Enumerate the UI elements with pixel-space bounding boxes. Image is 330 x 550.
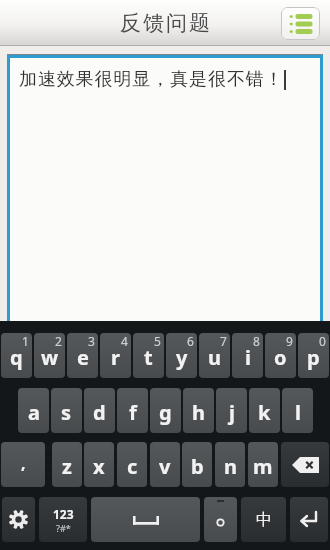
staticText: 加速效果很明显，真是很不错！	[19, 68, 284, 91]
staticText: q	[10, 344, 23, 371]
staticText: a	[28, 399, 40, 426]
staticText: f	[129, 399, 137, 426]
button[interactable]	[204, 497, 237, 542]
button[interactable]: b	[182, 442, 212, 487]
staticText: w	[41, 344, 59, 371]
button[interactable]: w	[34, 333, 65, 378]
staticText: e	[77, 344, 89, 371]
button[interactable]	[281, 442, 329, 487]
button[interactable]: 加速效果很明显，真是很不错！	[10, 58, 320, 321]
staticText: s	[61, 399, 72, 426]
staticText: u	[208, 344, 221, 371]
staticText: 4	[121, 333, 128, 349]
button[interactable]: a	[18, 388, 49, 433]
staticText: d	[93, 399, 106, 426]
button[interactable]	[91, 497, 200, 542]
button[interactable]: h	[183, 388, 214, 433]
button[interactable]: k	[249, 388, 280, 433]
staticText: c	[127, 453, 138, 480]
button[interactable]: c	[117, 442, 147, 487]
staticText: g	[159, 399, 172, 426]
staticText: ?#*	[56, 522, 71, 534]
button[interactable]: q	[1, 333, 32, 378]
button[interactable]: x	[84, 442, 114, 487]
button[interactable]	[2, 497, 35, 542]
button[interactable]: o	[265, 333, 296, 378]
staticText: r	[111, 344, 120, 371]
staticText: 7	[220, 333, 227, 349]
button[interactable]: l	[282, 388, 313, 433]
staticText: 3	[88, 333, 95, 349]
staticText: t	[144, 344, 153, 371]
button[interactable]: g	[150, 388, 181, 433]
staticText: v	[159, 453, 171, 480]
staticText: j	[229, 399, 235, 426]
staticText: ,	[21, 452, 26, 474]
button[interactable]: s	[51, 388, 82, 433]
button[interactable]: e	[67, 333, 98, 378]
button[interactable]: v	[150, 442, 180, 487]
staticText: m	[253, 453, 273, 480]
staticText: z	[62, 453, 72, 480]
button[interactable]: j	[216, 388, 247, 433]
button[interactable]: z	[52, 442, 82, 487]
button[interactable]: t	[133, 333, 164, 378]
button[interactable]: r	[100, 333, 131, 378]
staticText: i	[245, 344, 251, 371]
button[interactable]: i	[232, 333, 263, 378]
staticText: 8	[253, 333, 260, 349]
button[interactable]: ,	[1, 442, 45, 487]
button[interactable]: u	[199, 333, 230, 378]
button[interactable]: 123	[39, 497, 87, 542]
staticText: k	[258, 399, 271, 426]
staticText: 1	[22, 333, 29, 349]
staticText: 6	[187, 333, 194, 349]
button[interactable]: 中	[241, 497, 286, 542]
staticText: l	[295, 399, 301, 426]
button[interactable]	[290, 497, 328, 542]
staticText: h	[192, 399, 205, 426]
staticText: 5	[154, 333, 161, 349]
button[interactable]: p	[298, 333, 329, 378]
staticText: 中	[256, 510, 272, 530]
staticText: 2	[55, 333, 62, 349]
staticText: b	[191, 453, 204, 480]
button[interactable]: y	[166, 333, 197, 378]
staticText: x	[93, 453, 105, 480]
staticText: y	[176, 344, 188, 371]
staticText: 反馈问题	[119, 10, 211, 36]
button[interactable]: n	[215, 442, 245, 487]
staticText: 0	[319, 333, 326, 349]
staticText: 9	[286, 333, 293, 349]
staticText: 123	[53, 506, 74, 522]
staticText: n	[224, 453, 237, 480]
staticText: o	[274, 344, 287, 371]
button[interactable]: f	[117, 388, 148, 433]
button[interactable]: m	[248, 442, 278, 487]
button[interactable]	[281, 7, 320, 40]
button[interactable]: d	[84, 388, 115, 433]
staticText: p	[307, 344, 320, 371]
